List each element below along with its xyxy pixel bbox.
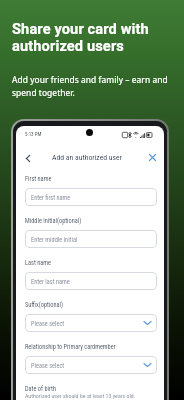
staticText: Suffix(optional)	[25, 301, 63, 308]
button[interactable]: Enter middle initial	[25, 230, 157, 248]
staticText: Authorized user should be at least 13 ye…	[25, 393, 136, 400]
staticText: Middle initial(optional)	[25, 217, 82, 224]
staticText: Please select	[31, 320, 65, 327]
staticText: 5:13 PM	[25, 131, 42, 137]
staticText: Enter first name	[31, 194, 71, 201]
button[interactable]: Back	[19, 149, 37, 167]
staticText: Please select	[31, 362, 65, 369]
button[interactable]: Please select	[25, 314, 157, 332]
staticText: First name	[25, 175, 52, 182]
button[interactable]: Close	[143, 148, 161, 166]
staticText: Enter last name	[31, 278, 70, 285]
staticText: Add an authorized user	[52, 153, 123, 162]
staticText: Share your card with authorized users	[12, 20, 149, 54]
staticText: Relationship to Primary cardmember	[25, 343, 116, 350]
staticText: Date of birth	[25, 385, 56, 392]
staticText: Add your friends and family – earn and s…	[12, 74, 168, 98]
button[interactable]: Please select	[25, 356, 157, 374]
staticText: Enter middle initial	[31, 236, 78, 243]
button[interactable]: Enter last name	[25, 272, 157, 290]
button[interactable]: Enter first name	[25, 188, 157, 206]
staticText: Last name	[25, 259, 51, 266]
